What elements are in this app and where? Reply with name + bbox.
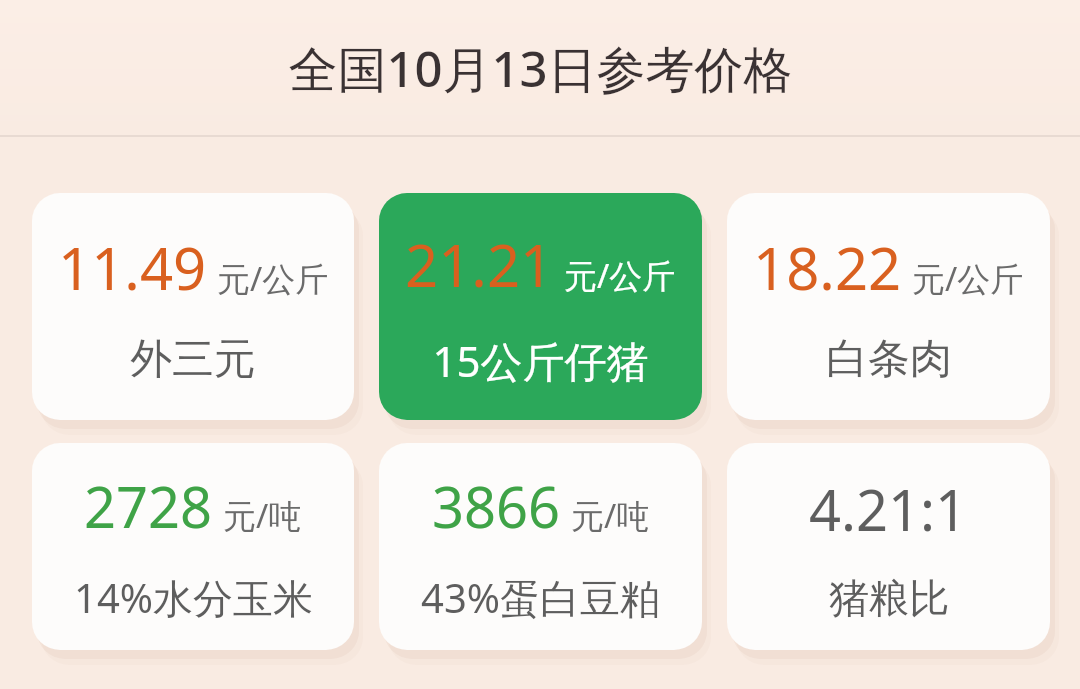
button[interactable]: 11.49 (32, 193, 354, 420)
staticText: 白条肉 (826, 333, 952, 386)
staticText: 3866 (432, 468, 561, 544)
staticText: 15公斤仔猪 (432, 332, 649, 389)
staticText: 猪粮比 (829, 573, 949, 623)
button[interactable]: 2728 (32, 443, 354, 650)
button[interactable]: 21.21 (379, 193, 702, 420)
staticText: 元/公斤 (217, 256, 329, 301)
staticText: 14%水分玉米 (74, 570, 313, 625)
button[interactable]: 18.22 (727, 193, 1050, 420)
staticText: 21.21 (405, 225, 554, 304)
staticText: 全国10月13日参考价格 (288, 35, 793, 102)
staticText: 11.49 (58, 228, 207, 307)
staticText: 2728 (84, 468, 213, 544)
button[interactable]: 4.21:1 (727, 443, 1050, 650)
staticText: 外三元 (130, 333, 256, 386)
button[interactable]: 3866 (379, 443, 702, 650)
staticText: 元/吨 (571, 493, 650, 538)
staticText: 元/吨 (223, 493, 302, 538)
staticText: 43%蛋白豆粕 (421, 570, 660, 625)
staticText: 元/公斤 (564, 253, 676, 298)
staticText: 4.21:1 (809, 471, 968, 547)
staticText: 元/公斤 (912, 256, 1024, 301)
staticText: 18.22 (753, 228, 902, 307)
